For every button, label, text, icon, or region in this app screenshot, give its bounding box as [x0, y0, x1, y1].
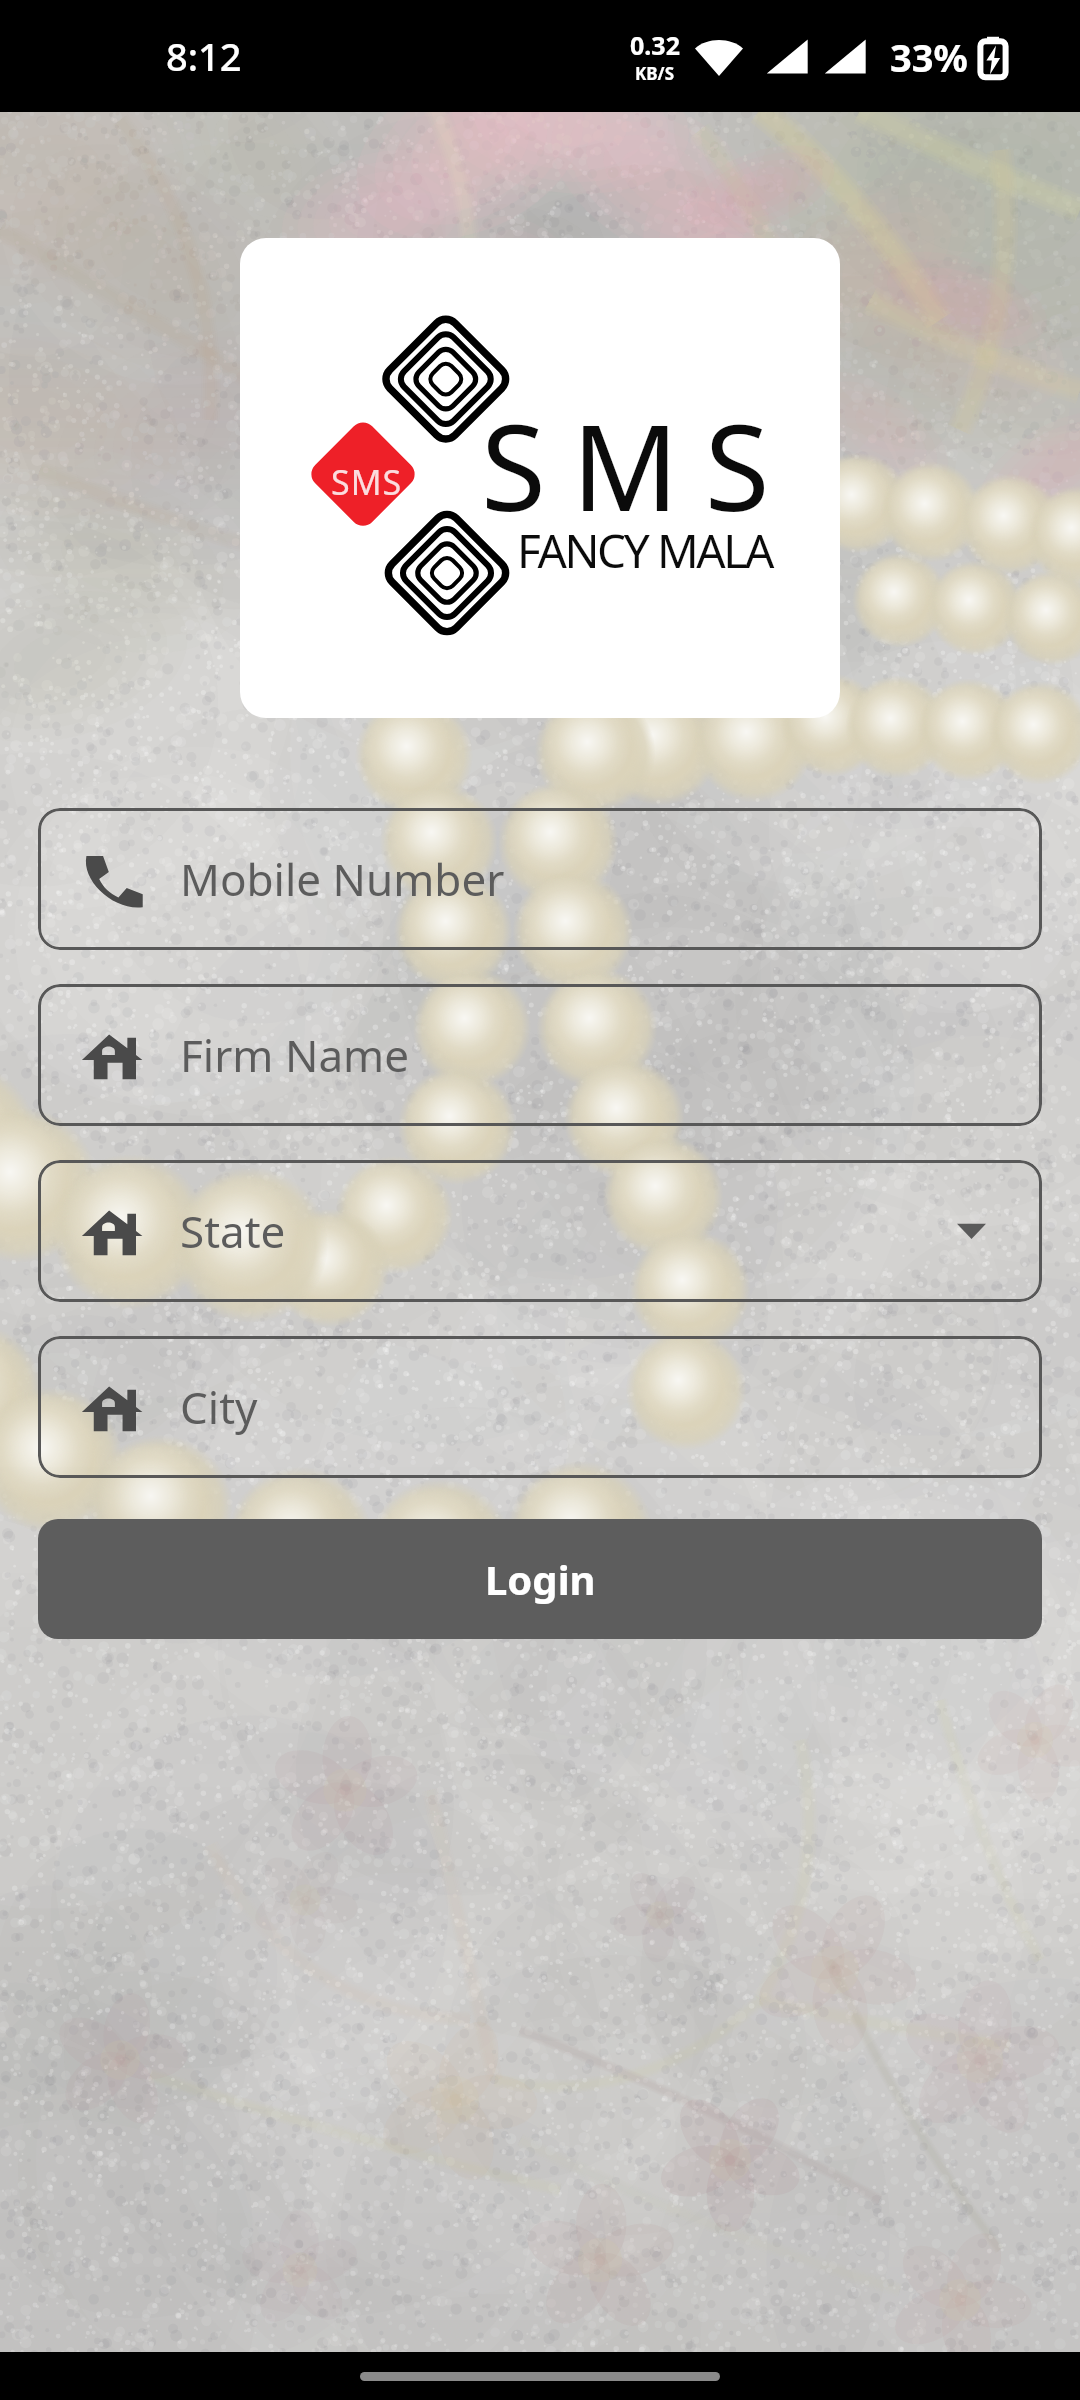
staticText: SMS [331, 459, 403, 505]
button[interactable]: Firm Name [38, 984, 1042, 1126]
staticText: 8:12 [166, 30, 242, 82]
button[interactable]: State [38, 1160, 1042, 1302]
staticText: City [180, 1377, 258, 1437]
staticText: Firm Name [180, 1025, 410, 1085]
staticText: 0.32 [630, 28, 680, 62]
staticText: FANCY MALA [517, 519, 772, 582]
staticText: State [180, 1201, 286, 1261]
staticText: Login [485, 1552, 596, 1606]
button[interactable]: Open the State drop-down list [957, 1212, 986, 1250]
staticText: 33% [890, 31, 968, 83]
button[interactable]: Mobile Number [38, 808, 1042, 950]
button[interactable]: City [38, 1336, 1042, 1478]
staticText: KB/S [635, 62, 675, 85]
staticText: Mobile Number [180, 849, 505, 909]
staticText: SMS [481, 385, 796, 546]
button[interactable]: Login [38, 1519, 1042, 1639]
